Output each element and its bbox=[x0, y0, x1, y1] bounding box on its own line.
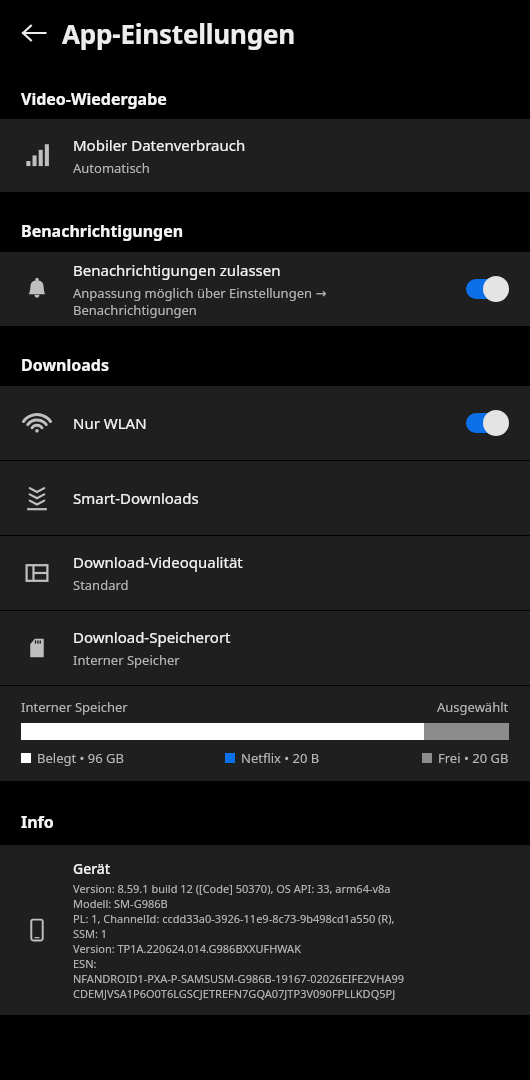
staticText: Frei • 20 GB bbox=[438, 749, 509, 767]
button[interactable]: Mobiler Datenverbrauch bbox=[0, 119, 530, 192]
staticText: Download-Videoqualität bbox=[73, 552, 243, 572]
staticText: App-Einstellungen bbox=[62, 16, 296, 51]
staticText: Belegt • 96 GB bbox=[37, 749, 124, 767]
staticText: Benachrichtigungen bbox=[21, 220, 184, 242]
staticText: Version: 8.59.1 build 12 ([Code] 50370),… bbox=[73, 881, 404, 1001]
staticText: Interner Speicher bbox=[73, 651, 180, 669]
button[interactable]: Benachrichtigungen zulassen bbox=[0, 252, 530, 326]
button[interactable]: Download-Speicherort bbox=[0, 611, 530, 685]
staticText: Ausgewählt bbox=[437, 698, 509, 716]
staticText: Mobiler Datenverbrauch bbox=[73, 135, 246, 155]
button[interactable]: Umschalten bbox=[464, 275, 510, 303]
button[interactable]: Nur WLAN bbox=[0, 386, 530, 460]
staticText: Benachrichtigungen zulassen bbox=[73, 260, 281, 280]
staticText: Interner Speicher bbox=[21, 698, 128, 716]
staticText: Anpassung möglich über Einstellungen → B… bbox=[73, 284, 327, 319]
button[interactable]: Download-Videoqualität bbox=[0, 536, 530, 610]
staticText: Downloads bbox=[21, 354, 109, 376]
staticText: Gerät bbox=[73, 859, 111, 878]
button[interactable]: Gerät bbox=[0, 859, 530, 1001]
button[interactable]: Umschalten bbox=[464, 409, 510, 437]
button[interactable]: Zurück bbox=[12, 11, 56, 55]
staticText: Standard bbox=[73, 576, 129, 594]
staticText: Netflix • 20 B bbox=[241, 749, 320, 767]
staticText: Nur WLAN bbox=[73, 413, 147, 433]
staticText: Automatisch bbox=[73, 159, 150, 177]
staticText: Download-Speicherort bbox=[73, 627, 231, 647]
staticText: Info bbox=[21, 811, 54, 833]
staticText: Smart-Downloads bbox=[73, 488, 199, 508]
button[interactable]: Smart-Downloads bbox=[0, 461, 530, 535]
staticText: Video-Wiedergabe bbox=[21, 88, 167, 110]
